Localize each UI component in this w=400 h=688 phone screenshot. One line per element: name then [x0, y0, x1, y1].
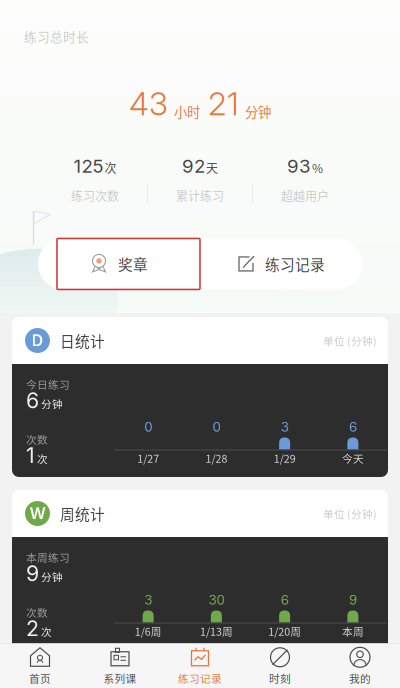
staticText: 3 [144, 592, 152, 608]
staticText: 分钟 [41, 569, 63, 584]
button[interactable]: W [12, 490, 388, 537]
staticText: W [29, 504, 45, 523]
staticText: 93 [287, 155, 311, 177]
staticText: 超越用户 [281, 187, 329, 204]
staticText: 30 [208, 592, 224, 608]
button[interactable]: 时刻 [240, 642, 320, 688]
staticText: 1/27 [137, 450, 159, 466]
button[interactable]: 奖章 [38, 238, 200, 289]
staticText: 天 [206, 159, 218, 176]
staticText: 1 [26, 443, 35, 468]
button[interactable]: D [12, 317, 388, 364]
staticText: 3 [281, 419, 289, 435]
staticText: 1/28 [205, 450, 227, 466]
staticText: 单位 (分钟) [323, 506, 377, 521]
staticText: 1/6周 [135, 623, 162, 639]
staticText: 分钟 [245, 102, 271, 121]
staticText: 21 [208, 84, 239, 123]
button[interactable]: 练习记录 [160, 642, 240, 688]
button[interactable]: 系列课 [80, 642, 160, 688]
staticText: 周统计 [60, 503, 105, 524]
staticText: 日统计 [60, 330, 105, 351]
staticText: 0 [144, 419, 152, 435]
staticText: 练习记录 [178, 670, 222, 686]
staticText: 9 [349, 592, 357, 608]
button[interactable]: 练习记录 [200, 238, 362, 289]
button[interactable]: 首页 [0, 642, 80, 688]
staticText: 小时 [174, 102, 200, 121]
staticText: 今日练习 [26, 376, 70, 392]
staticText: 时刻 [269, 670, 291, 686]
staticText: 练习次数 [71, 187, 119, 204]
staticText: 累计练习 [176, 187, 224, 204]
staticText: 6 [26, 388, 39, 413]
staticText: D [31, 331, 43, 350]
staticText: 单位 (分钟) [323, 333, 377, 348]
staticText: 2 [26, 616, 39, 641]
staticText: 我的 [349, 670, 371, 686]
staticText: 练习总时长 [24, 27, 89, 45]
staticText: 次数 [26, 431, 48, 447]
staticText: 1/29 [274, 450, 296, 466]
staticText: 6 [349, 419, 357, 435]
staticText: 首页 [29, 670, 51, 686]
staticText: 6 [281, 592, 289, 608]
button[interactable]: 我的 [320, 642, 400, 688]
staticText: % [312, 159, 323, 176]
staticText: 分钟 [41, 396, 63, 411]
staticText: 次 [37, 451, 48, 466]
staticText: 次 [104, 159, 116, 176]
staticText: 125 [73, 155, 103, 177]
staticText: 92 [182, 155, 205, 177]
staticText: 练习记录 [265, 253, 325, 274]
staticText: 43 [129, 84, 168, 123]
staticText: 0 [212, 419, 220, 435]
staticText: 1/13周 [200, 623, 233, 639]
staticText: 次数 [26, 604, 48, 620]
staticText: 今天 [342, 450, 364, 466]
staticText: 9 [26, 561, 39, 586]
staticText: 次 [41, 624, 52, 639]
staticText: 奖章 [118, 253, 148, 274]
staticText: 系列课 [103, 670, 136, 686]
staticText: 本周练习 [26, 549, 70, 565]
staticText: 本周 [342, 623, 364, 639]
staticText: 1/20周 [268, 623, 301, 639]
